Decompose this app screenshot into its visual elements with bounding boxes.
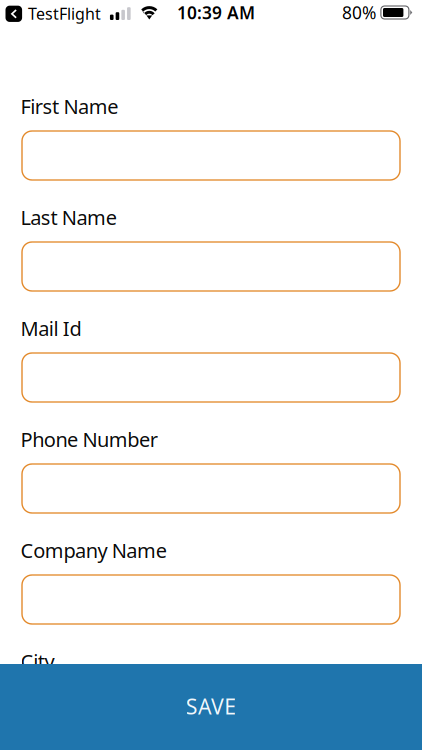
staticText: First Name xyxy=(20,93,118,119)
staticText: Phone Number xyxy=(20,426,158,452)
staticText: Last Name xyxy=(20,204,117,230)
button[interactable]: Back to TestFlight xyxy=(0,0,103,26)
staticText: City xyxy=(20,648,54,674)
staticText: 10:39 AM xyxy=(177,1,255,24)
staticText: 80% xyxy=(342,1,376,24)
button[interactable]: SAVE xyxy=(0,664,422,750)
staticText: TestFlight xyxy=(28,3,101,24)
staticText: Company Name xyxy=(20,537,167,563)
staticText: SAVE xyxy=(186,692,236,720)
staticText: Mail Id xyxy=(20,315,81,341)
